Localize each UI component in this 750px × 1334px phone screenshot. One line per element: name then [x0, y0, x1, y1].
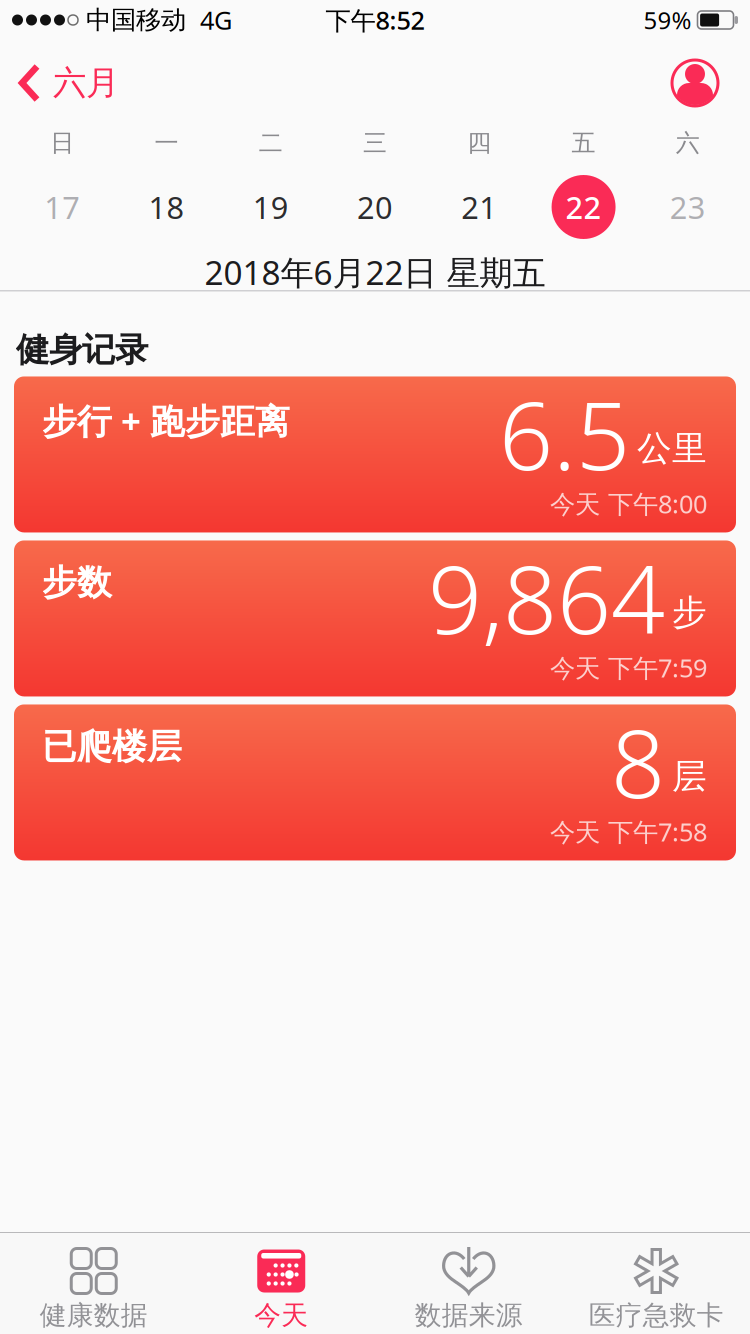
staticText: 三 [363, 128, 387, 158]
staticText: 健身记录 [16, 329, 148, 370]
staticText: 步行 + 跑步距离 [42, 397, 290, 443]
staticText: 23 [670, 187, 706, 227]
staticText: 公里 [637, 427, 707, 470]
staticText: 数据来源 [415, 1299, 523, 1332]
button[interactable]: 17 [10, 187, 114, 227]
staticText: 9,864 [428, 534, 665, 660]
staticText: 健康数据 [40, 1299, 148, 1332]
staticText: 下午8:52 [325, 3, 424, 37]
button[interactable]: 数据来源 [375, 1248, 562, 1332]
staticText: 2018年6月22日 星期五 [204, 250, 545, 294]
button[interactable]: 步数 [14, 540, 736, 696]
staticText: 20 [357, 187, 393, 227]
button[interactable] [670, 58, 720, 108]
staticText: 中国移动 [86, 4, 186, 35]
staticText: 59% [643, 4, 691, 36]
button[interactable]: 18 [114, 187, 219, 227]
staticText: 今天 下午7:58 [550, 815, 707, 848]
button[interactable]: 医疗急救卡 [562, 1248, 750, 1332]
button[interactable]: 20 [323, 187, 427, 227]
staticText: 17 [44, 187, 80, 227]
staticText: 六 [676, 128, 700, 158]
staticText: 二 [259, 128, 283, 158]
staticText: 4G [200, 3, 232, 37]
button[interactable]: 21 [427, 187, 531, 227]
button[interactable]: 步行 + 跑步距离 [14, 376, 736, 532]
button[interactable]: 23 [636, 187, 740, 227]
staticText: 层 [672, 755, 707, 798]
staticText: 22 [566, 187, 602, 227]
staticText: 18 [148, 187, 184, 227]
button[interactable]: 六月 [18, 62, 119, 103]
button[interactable]: 22 [531, 175, 636, 239]
staticText: 21 [461, 187, 497, 227]
staticText: 四 [467, 128, 491, 158]
staticText: 医疗急救卡 [589, 1299, 724, 1332]
button[interactable]: 健康数据 [0, 1248, 187, 1332]
staticText: 今天 下午7:59 [550, 651, 707, 684]
staticText: 一 [154, 128, 178, 158]
staticText: 8 [611, 698, 665, 824]
staticText: 6.5 [499, 370, 630, 496]
button[interactable]: 已爬楼层 [14, 704, 736, 860]
staticText: 19 [253, 187, 289, 227]
staticText: 今天 [254, 1299, 308, 1332]
staticText: 今天 下午8:00 [550, 487, 707, 520]
button[interactable]: 今天 [187, 1248, 375, 1332]
button[interactable]: 19 [219, 187, 323, 227]
staticText: 五 [572, 128, 596, 158]
staticText: 日 [50, 128, 74, 158]
staticText: 已爬楼层 [42, 725, 182, 768]
staticText: 步数 [42, 561, 112, 604]
staticText: 六月 [53, 62, 119, 103]
staticText: 步 [672, 591, 707, 634]
